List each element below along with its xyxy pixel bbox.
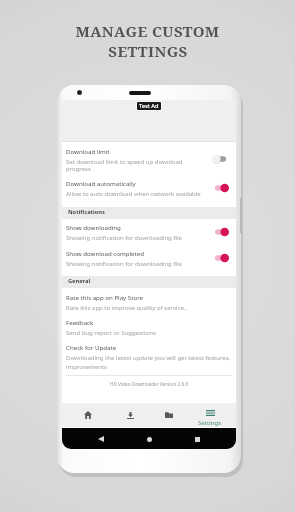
staticText: Set download limit to speed up download bbox=[66, 158, 183, 166]
staticText: MANAGE CUSTOM bbox=[75, 21, 220, 41]
button[interactable]: Downloads bbox=[110, 403, 150, 427]
button[interactable]: Home bbox=[137, 428, 161, 449]
staticText: Settings bbox=[198, 418, 222, 426]
button[interactable] bbox=[62, 245, 236, 271]
button[interactable]: Home bbox=[68, 403, 108, 427]
staticText: Showing notification for downloading fil… bbox=[66, 260, 182, 268]
staticText: Notifications bbox=[68, 208, 105, 216]
staticText: General bbox=[68, 277, 91, 285]
button[interactable] bbox=[62, 341, 236, 372]
button[interactable] bbox=[62, 175, 236, 202]
button[interactable]: Toggle on bbox=[211, 227, 230, 237]
button[interactable] bbox=[62, 315, 236, 341]
staticText: Rate this app to improve quality of serv… bbox=[66, 304, 188, 312]
staticText: Test Ad bbox=[139, 102, 159, 110]
staticText: Show downloading bbox=[66, 223, 121, 231]
staticText: Rate this app on Play Store bbox=[66, 293, 144, 301]
button[interactable]: Settings bbox=[189, 403, 231, 427]
staticText: Download limit bbox=[66, 147, 110, 155]
button[interactable]: Toggle on bbox=[211, 253, 230, 263]
button[interactable]: Toggle on bbox=[211, 183, 230, 193]
staticText: progress bbox=[66, 165, 91, 173]
button[interactable]: Files bbox=[149, 403, 189, 427]
button[interactable] bbox=[62, 289, 236, 315]
button[interactable]: Back bbox=[89, 428, 113, 449]
button[interactable] bbox=[62, 219, 236, 245]
staticText: Allow to auto download when network avai… bbox=[66, 190, 201, 198]
staticText: Show download completed bbox=[66, 249, 144, 257]
staticText: Check for Update bbox=[66, 343, 117, 351]
staticText: improvements bbox=[66, 363, 107, 371]
staticText: Downloading the latest update you will g… bbox=[66, 354, 231, 362]
staticText: HD Video Downloader Version 2.6.6 bbox=[110, 381, 189, 387]
button[interactable]: Toggle off bbox=[211, 154, 230, 164]
staticText: Showing notification for downloading fil… bbox=[66, 234, 182, 242]
staticText: SETTINGS bbox=[108, 41, 188, 61]
staticText: Feedback bbox=[66, 318, 94, 326]
staticText: Send bug report or Suggestions bbox=[66, 329, 156, 337]
button[interactable]: Recent apps bbox=[185, 428, 209, 449]
button[interactable] bbox=[62, 143, 236, 175]
staticText: Download automatically bbox=[66, 179, 136, 187]
